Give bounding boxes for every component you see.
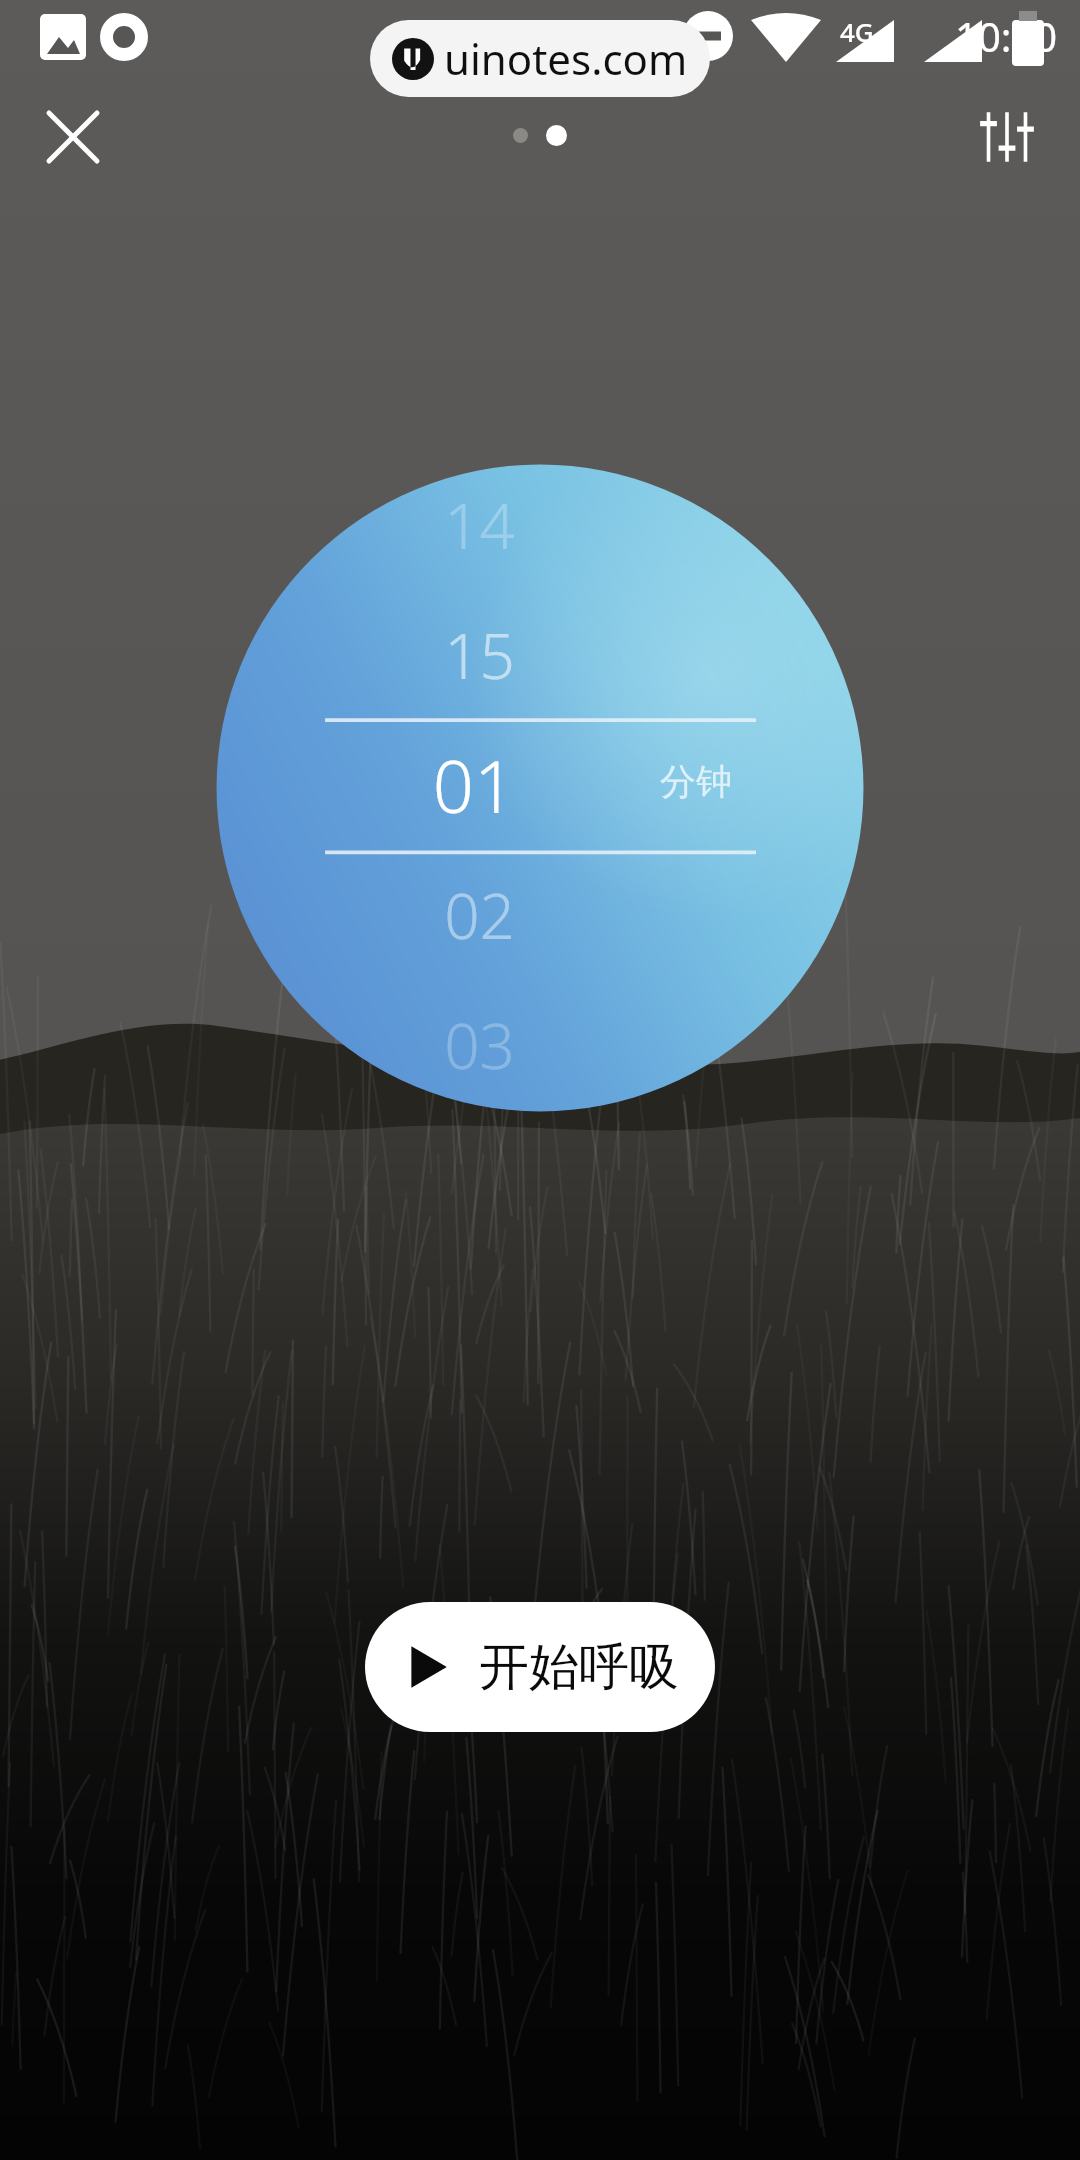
staticText: 14 xyxy=(335,483,515,567)
staticText: 10:50 xyxy=(955,9,1058,63)
staticText: 03 xyxy=(335,1003,515,1087)
staticText: 分钟 xyxy=(660,759,732,804)
staticText: 02 xyxy=(335,873,515,957)
staticText: 开始呼吸 xyxy=(479,1636,679,1699)
staticText: 4G xyxy=(770,14,804,49)
button[interactable]: Settings xyxy=(956,86,1058,188)
staticText: 01 xyxy=(335,736,515,834)
staticText: uinotes.com xyxy=(444,30,688,87)
staticText: 4G xyxy=(840,14,874,49)
button[interactable]: Close xyxy=(22,86,124,188)
staticText: 15 xyxy=(335,613,515,697)
button[interactable]: 开始呼吸 xyxy=(365,1602,715,1732)
